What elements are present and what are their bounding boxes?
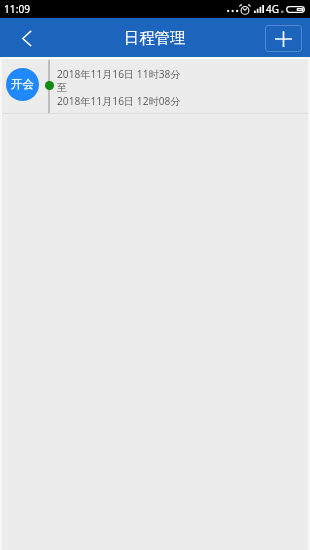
staticText: 4G [266,2,279,16]
button[interactable]: 开会 [0,59,310,114]
staticText: 2018年11月16日 12时08分 [57,94,181,108]
staticText: 开会 [11,77,34,91]
button[interactable]: Add schedule [265,25,302,52]
staticText: 11:09 [4,2,31,16]
button[interactable]: Back [0,18,44,57]
staticText: 2018年11月16日 11时38分 [57,67,181,81]
staticText: 日程管理 [124,28,186,47]
staticText: 至 [57,81,68,94]
